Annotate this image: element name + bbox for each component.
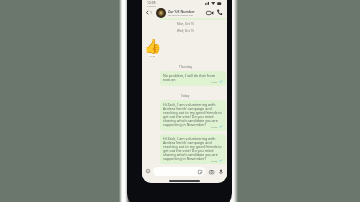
button[interactable]: Emoji [145,168,151,174]
button[interactable]: Camera [208,168,215,175]
button[interactable]: Video call [205,8,214,17]
staticText: 12:07 [211,80,218,83]
button[interactable]: Stickers [153,167,205,176]
staticText: tap here for contact info [168,14,193,17]
staticText: Zur'US Number [168,9,195,14]
button[interactable]: Hi Zack, I am volunteering with Andrea S… [160,100,226,131]
staticText: Today [181,94,190,98]
staticText: Hi Zack, I am volunteering with Andrea S… [163,102,223,128]
staticText: 2 alarms [147,5,156,7]
staticText: Mon, Oct 10 [177,22,195,26]
staticText: Wed, Oct 15 [177,29,194,33]
button[interactable]: Hi Zack, I am volunteering with Andrea S… [160,134,226,165]
button[interactable]: Call [215,8,224,17]
button[interactable]: Back [144,9,153,16]
button[interactable]: No problem, I will do that from now on [160,71,226,86]
staticText: No problem, I will do that from now on [163,73,223,83]
button[interactable]: Contact avatar [156,8,166,18]
staticText: 10:22 [211,125,218,128]
staticText: 👍 [144,38,162,54]
staticText: 1 [150,10,152,15]
staticText: 12:05 [147,0,156,5]
button[interactable]: Stickers [197,169,203,175]
staticText: 10:22 [211,159,218,162]
button[interactable]: Voice message [217,168,224,175]
staticText: Hi Zack, I am volunteering with Andrea S… [163,136,223,162]
staticText: Thursday [179,65,193,69]
staticText: 12:39 [149,54,156,57]
